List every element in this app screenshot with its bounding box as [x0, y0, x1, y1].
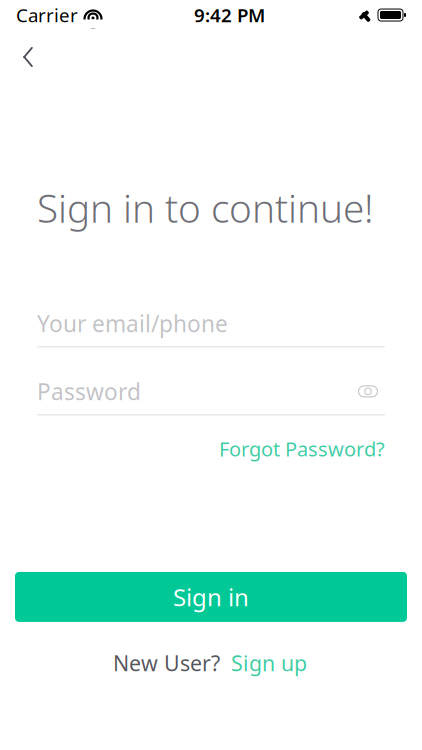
- staticText: Carrier: [16, 3, 78, 27]
- button[interactable]: Sign up: [229, 646, 309, 680]
- button[interactable]: Back: [6, 35, 50, 79]
- staticText: 9:42 PM: [194, 3, 265, 27]
- button[interactable]: Show password: [351, 378, 385, 404]
- button[interactable]: Sign in: [15, 572, 407, 622]
- staticText: Your email/phone: [37, 308, 228, 338]
- staticText: New User?: [113, 649, 220, 677]
- staticText: Sign in: [173, 581, 249, 613]
- staticText: Password: [37, 376, 141, 406]
- staticText: Forgot Password?: [219, 435, 385, 462]
- button[interactable]: Forgot Password?: [219, 431, 385, 466]
- staticText: Sign up: [231, 649, 307, 677]
- staticText: Sign in to continue!: [37, 182, 374, 233]
